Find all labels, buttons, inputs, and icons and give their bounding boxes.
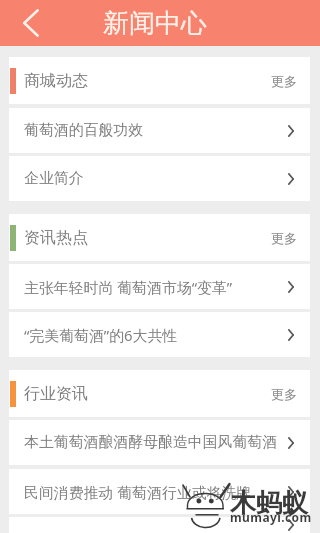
staticText: 更多 [271,230,297,246]
button[interactable]: Back [0,0,62,46]
button[interactable]: 更多 [247,59,310,103]
staticText: 主张年轻时尚 葡萄酒市场“变革” [24,277,288,297]
button[interactable]: 葡萄酒的百般功效 [9,108,310,153]
staticText: 更多 [271,386,297,402]
staticText: 民间消费推动 葡萄酒行业或将洗牌 [24,482,288,502]
staticText: 行业资讯 [24,384,88,404]
staticText [24,517,288,533]
button[interactable]: 更多 [247,372,310,416]
button[interactable]: 民间消费推动 葡萄酒行业或将洗牌 [9,469,310,514]
staticText: 更多 [271,73,297,89]
staticText: 葡萄酒的百般功效 [24,121,288,140]
staticText: 新闻中心 [103,7,207,40]
button[interactable]: 本土葡萄酒酿酒酵母酿造中国风葡萄酒 [9,420,310,465]
staticText: “完美葡萄酒”的6大共性 [24,325,288,345]
staticText: mumayi.com [230,509,312,525]
staticText: 企业简介 [24,169,288,188]
button[interactable]: 更多 [247,216,310,260]
staticText: 本土葡萄酒酿酒酵母酿造中国风葡萄酒 [24,433,288,452]
button[interactable]: 主张年轻时尚 葡萄酒市场“变革” [9,264,310,309]
button[interactable] [9,517,310,533]
button[interactable]: 企业简介 [9,156,310,201]
button[interactable]: “完美葡萄酒”的6大共性 [9,312,310,357]
staticText: 资讯热点 [24,228,88,248]
staticText: 商城动态 [24,71,88,91]
staticText: 木蚂蚁 [230,487,308,520]
